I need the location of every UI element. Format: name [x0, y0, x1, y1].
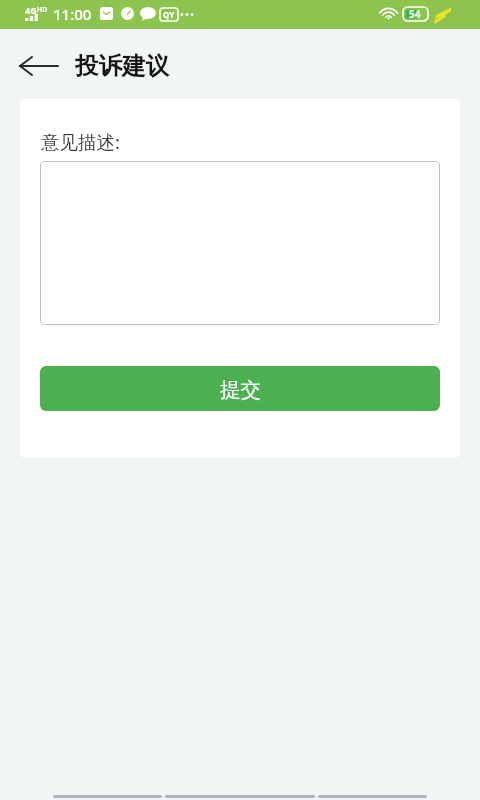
staticText: 54: [409, 7, 421, 21]
button[interactable]: Home: [165, 793, 315, 798]
staticText: 4G: [25, 4, 37, 16]
staticText: 提交: [220, 377, 261, 403]
button[interactable]: Back: [53, 793, 162, 798]
staticText: QY: [163, 9, 175, 20]
button[interactable]: Recents: [318, 793, 427, 798]
button[interactable]: 提交: [40, 366, 440, 411]
staticText: 投诉建议: [75, 51, 169, 81]
staticText: 11:00: [53, 4, 92, 24]
button[interactable]: Back: [8, 46, 70, 82]
button[interactable]: 意见描述输入框: [40, 161, 440, 325]
staticText: HD: [37, 5, 48, 15]
staticText: 意见描述:: [41, 129, 120, 154]
